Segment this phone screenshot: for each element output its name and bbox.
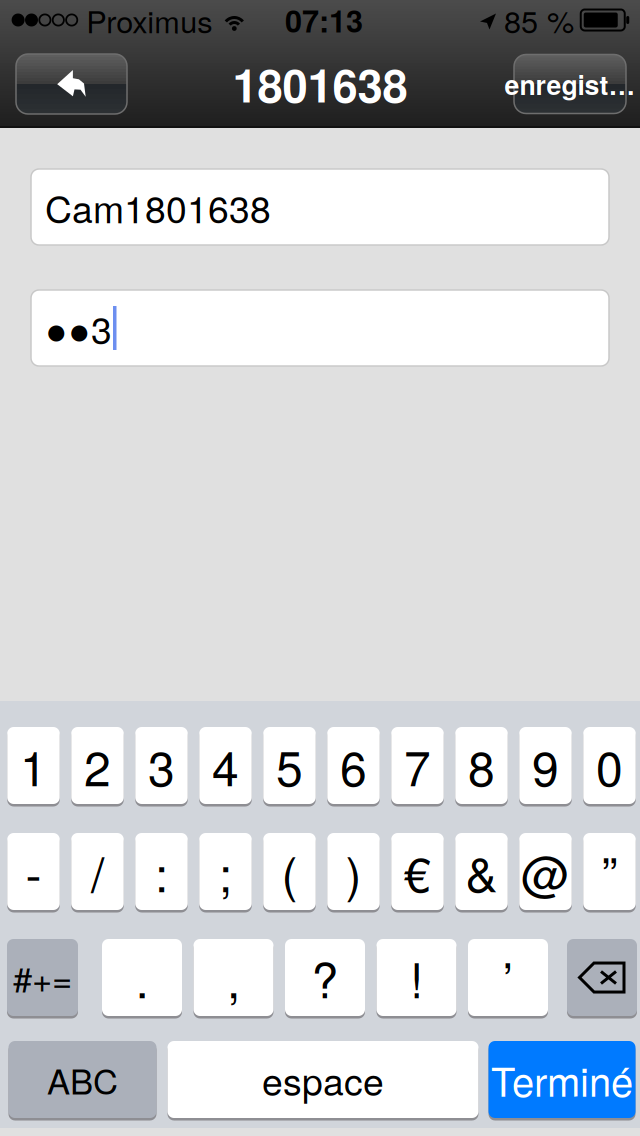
staticText: #+= xyxy=(13,953,72,1002)
staticText: 9 xyxy=(532,731,559,800)
staticText: ●●3 xyxy=(45,301,112,355)
button[interactable]: 9 xyxy=(519,727,572,804)
button[interactable]: ( xyxy=(263,833,316,910)
staticText: 7 xyxy=(404,731,431,800)
button[interactable]: 0 xyxy=(583,727,636,804)
button[interactable]: Terminé xyxy=(488,1041,635,1118)
button[interactable]: #+= xyxy=(7,939,78,1016)
button[interactable]: @ xyxy=(519,833,572,910)
staticText: ; xyxy=(219,837,232,906)
button[interactable]: 7 xyxy=(391,727,444,804)
staticText: Proximus xyxy=(86,0,212,42)
button[interactable]: ABC xyxy=(8,1041,156,1118)
staticText: enregist… xyxy=(504,65,635,103)
button[interactable]: 3 xyxy=(135,727,188,804)
staticText: & xyxy=(465,837,497,906)
staticText: ” xyxy=(601,837,617,906)
staticText: ! xyxy=(410,943,423,1012)
staticText: 07:13 xyxy=(285,0,363,42)
button[interactable]: / xyxy=(71,833,124,910)
staticText: 4 xyxy=(212,731,239,800)
button[interactable]: 2 xyxy=(71,727,124,804)
staticText: Cam1801638 xyxy=(45,180,271,234)
staticText: 1801638 xyxy=(232,51,407,116)
button[interactable]: ; xyxy=(199,833,252,910)
staticText: ) xyxy=(345,837,361,906)
staticText: 1 xyxy=(20,731,47,800)
staticText: espace xyxy=(262,1053,384,1106)
button[interactable]: ’ xyxy=(468,939,548,1016)
staticText: € xyxy=(404,837,431,906)
staticText: ABC xyxy=(47,1055,118,1104)
staticText: 2 xyxy=(84,731,111,800)
button[interactable]: Back xyxy=(16,54,127,114)
button[interactable]: enregist… xyxy=(514,54,626,113)
button[interactable]: ? xyxy=(285,939,365,1016)
staticText: ? xyxy=(311,943,338,1012)
staticText: ( xyxy=(281,837,297,906)
staticText: , xyxy=(227,943,240,1012)
button[interactable]: : xyxy=(135,833,188,910)
staticText: 3 xyxy=(148,731,175,800)
staticText: 85 % xyxy=(504,0,574,42)
button[interactable]: ! xyxy=(376,939,456,1016)
button[interactable]: 6 xyxy=(327,727,380,804)
staticText: 6 xyxy=(340,731,367,800)
button[interactable]: 5 xyxy=(263,727,316,804)
button[interactable]: € xyxy=(391,833,444,910)
staticText: ’ xyxy=(502,943,513,1012)
button[interactable]: - xyxy=(7,833,60,910)
button[interactable]: ” xyxy=(583,833,636,910)
staticText: 0 xyxy=(596,731,623,800)
staticText: Terminé xyxy=(491,1051,633,1108)
staticText: 5 xyxy=(276,731,303,800)
staticText: / xyxy=(91,837,104,906)
button[interactable]: . xyxy=(102,939,182,1016)
staticText: . xyxy=(135,943,148,1012)
button[interactable]: ) xyxy=(327,833,380,910)
staticText: 8 xyxy=(468,731,495,800)
staticText: @ xyxy=(521,837,570,906)
button[interactable]: 4 xyxy=(199,727,252,804)
button[interactable]: Delete xyxy=(567,939,637,1016)
button[interactable]: 8 xyxy=(455,727,508,804)
button[interactable]: , xyxy=(193,939,273,1016)
button[interactable]: & xyxy=(455,833,508,910)
staticText: - xyxy=(25,837,41,906)
button[interactable]: espace xyxy=(167,1041,478,1118)
staticText: : xyxy=(155,837,168,906)
button[interactable]: 1 xyxy=(7,727,60,804)
